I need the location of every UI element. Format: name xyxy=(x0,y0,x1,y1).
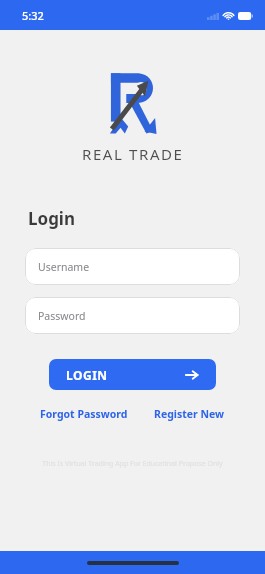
button[interactable]: Username xyxy=(25,248,240,285)
staticText: This Is Virtual Trading App For Educatin… xyxy=(0,459,265,469)
other: Login xyxy=(185,368,199,382)
staticText: Register New xyxy=(154,407,225,421)
staticText: Forgot Password xyxy=(40,407,128,421)
staticText: Login xyxy=(28,207,76,230)
other: Home gesture bar xyxy=(87,561,179,565)
button[interactable]: Register New xyxy=(154,407,225,421)
staticText: 5:32 xyxy=(22,8,44,23)
staticText: Password xyxy=(38,309,86,323)
staticText: LOGIN xyxy=(66,367,108,383)
button[interactable]: Password xyxy=(25,297,240,334)
staticText: REAL TRADE xyxy=(82,144,184,164)
button[interactable]: LOGIN xyxy=(49,359,216,390)
button[interactable]: Forgot Password xyxy=(40,407,128,421)
staticText: Username xyxy=(38,260,90,274)
